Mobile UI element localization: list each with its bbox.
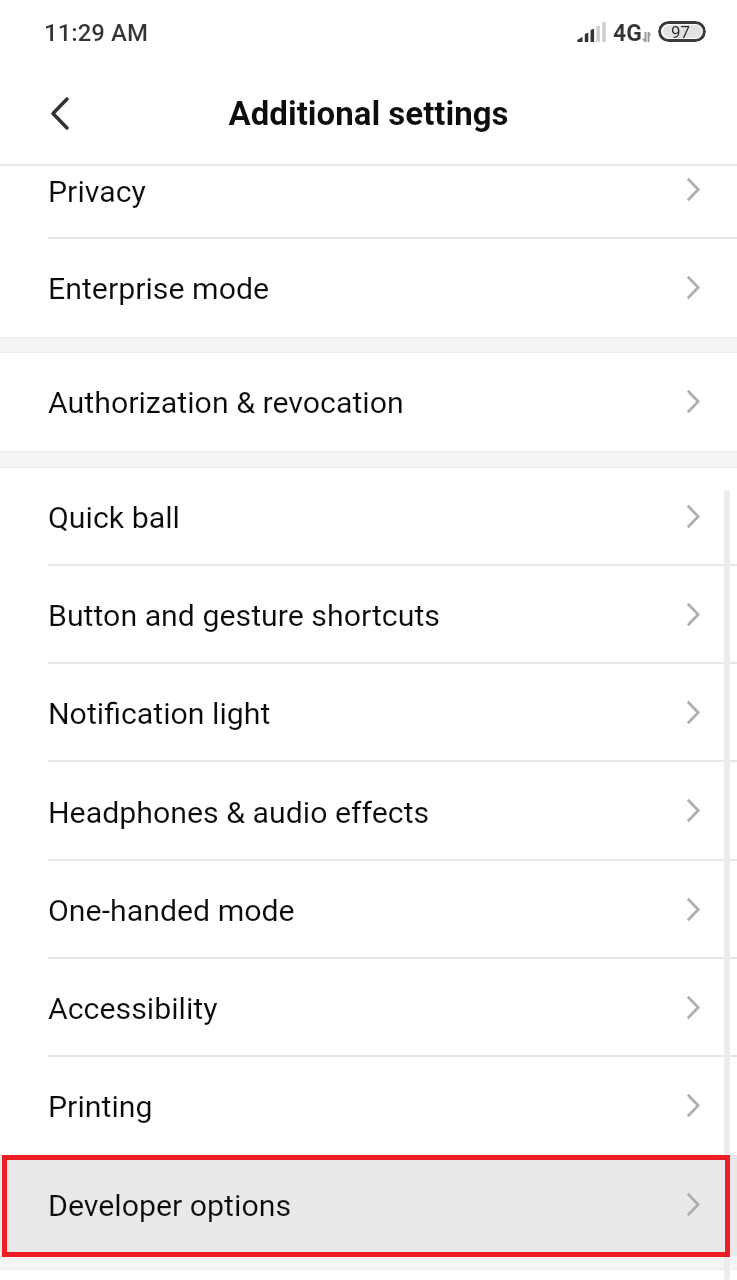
button[interactable]: One-handed mode bbox=[0, 861, 737, 959]
staticText: Headphones & audio effects bbox=[48, 795, 430, 831]
staticText: Privacy bbox=[48, 174, 146, 210]
staticText: Quick ball bbox=[48, 500, 180, 536]
button[interactable]: Accessibility bbox=[0, 959, 737, 1057]
button[interactable]: Back bbox=[24, 77, 96, 149]
button[interactable]: Authorization & revocation bbox=[0, 353, 737, 451]
button[interactable]: Privacy bbox=[0, 166, 737, 239]
staticText: Developer options bbox=[48, 1188, 292, 1224]
staticText: Button and gesture shortcuts bbox=[48, 598, 440, 634]
staticText: Printing bbox=[48, 1089, 153, 1125]
staticText: Notification light bbox=[48, 696, 271, 732]
staticText: Accessibility bbox=[48, 991, 218, 1027]
button[interactable]: Headphones & audio effects bbox=[0, 762, 737, 861]
staticText: Enterprise mode bbox=[48, 271, 270, 307]
button[interactable]: Developer options bbox=[0, 1155, 737, 1255]
staticText: 11:29 AM bbox=[44, 19, 148, 47]
button[interactable]: Button and gesture shortcuts bbox=[0, 566, 737, 664]
staticText: Authorization & revocation bbox=[48, 385, 404, 421]
button[interactable]: Printing bbox=[0, 1057, 737, 1155]
button[interactable]: Quick ball bbox=[0, 468, 737, 566]
staticText: 97 bbox=[671, 22, 691, 42]
button[interactable]: Enterprise mode bbox=[0, 239, 737, 337]
staticText: Additional settings bbox=[228, 94, 509, 133]
staticText: 4G bbox=[613, 20, 642, 47]
staticText: One-handed mode bbox=[48, 893, 295, 929]
button[interactable]: Notification light bbox=[0, 664, 737, 762]
